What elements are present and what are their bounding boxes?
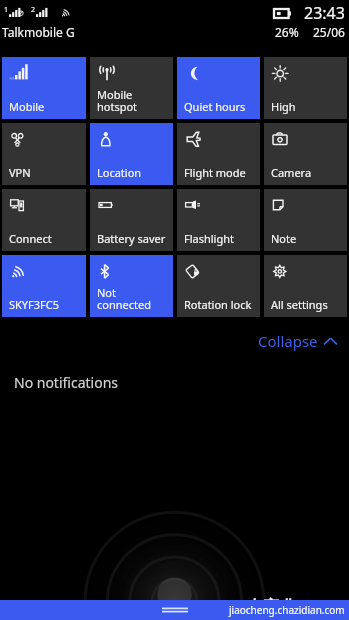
button[interactable]: Hide navigation bar [162,606,188,614]
staticText: Note [271,231,297,246]
button[interactable]: Battery saver [90,189,173,251]
staticText: No notifications [14,373,119,392]
button[interactable]: Camera [264,123,347,185]
button[interactable]: All settings [264,255,347,317]
staticText: 教程网 [303,600,342,616]
staticText: Rotation lock [184,297,252,312]
staticText: Camera [271,165,312,180]
staticText: Mobile [9,99,45,114]
button[interactable]: Note [264,189,347,251]
staticText: VPN [9,165,31,180]
button[interactable]: Mobile [2,57,86,119]
staticText: 26% [275,24,299,40]
staticText: Location [97,165,142,180]
staticText: 2 [31,5,36,15]
staticText: Quiet hours [184,99,246,114]
staticText: 25/06 [313,24,345,40]
staticText: Talkmobile [2,24,63,40]
staticText: Mobile hotspot [97,87,138,114]
staticText: jiaocheng.chazidian.com [229,603,345,617]
staticText: 23:43 [304,2,345,24]
staticText: 1 [4,5,9,15]
button[interactable]: Quiet hours [177,57,260,119]
button[interactable]: SKYF3FC5 [2,255,86,317]
staticText: Connect [9,231,52,246]
staticText: 查字典 [246,597,297,618]
button[interactable]: Location [90,123,173,185]
button[interactable]: Mobile hotspot [90,57,173,119]
staticText: High [271,99,296,114]
staticText: Flight mode [184,165,246,180]
button[interactable]: VPN [2,123,86,185]
staticText: Flashlight [184,231,234,246]
staticText: All settings [271,297,328,312]
button[interactable]: Flight mode [177,123,260,185]
button[interactable]: Rotation lock [177,255,260,317]
button[interactable]: High [264,57,347,119]
button[interactable]: Not connected [90,255,173,317]
staticText: Not connected [97,285,151,312]
staticText: Collapse [258,331,318,351]
staticText: Battery saver [97,231,166,246]
staticText: G [66,24,75,40]
staticText: SKYF3FC5 [9,297,60,312]
button[interactable]: Collapse [254,327,341,355]
button[interactable]: Flashlight [177,189,260,251]
button[interactable]: Connect [2,189,86,251]
